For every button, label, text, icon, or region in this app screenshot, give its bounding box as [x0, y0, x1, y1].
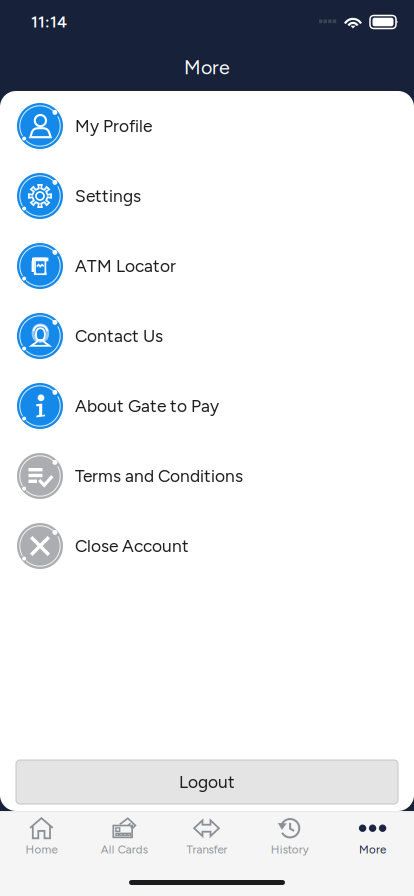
button[interactable]: Logout: [16, 760, 398, 804]
staticText: Close Account: [75, 536, 189, 556]
button[interactable]: More: [331, 811, 414, 862]
staticText: Transfer: [186, 843, 227, 856]
staticText: My Profile: [75, 116, 152, 136]
staticText: Logout: [179, 772, 235, 792]
button[interactable]: Transfer: [166, 811, 248, 862]
button[interactable]: Terms and Conditions: [0, 441, 414, 511]
staticText: ATM Locator: [75, 256, 176, 276]
button[interactable]: Home: [0, 811, 83, 862]
button[interactable]: Settings: [0, 161, 414, 231]
staticText: More: [184, 56, 230, 79]
button[interactable]: My Profile: [0, 91, 414, 161]
button[interactable]: About Gate to Pay: [0, 371, 414, 441]
button[interactable]: ATM Locator: [0, 231, 414, 301]
button[interactable]: All Cards: [83, 811, 166, 862]
button[interactable]: Close Account: [0, 511, 414, 581]
staticText: Terms and Conditions: [75, 466, 243, 486]
staticText: Home: [25, 843, 57, 856]
staticText: History: [271, 843, 309, 856]
staticText: About Gate to Pay: [75, 396, 219, 416]
staticText: All Cards: [101, 843, 148, 856]
button[interactable]: History: [248, 811, 331, 862]
staticText: More: [359, 843, 386, 856]
button[interactable]: Contact Us: [0, 301, 414, 371]
staticText: Contact Us: [75, 326, 163, 346]
staticText: Settings: [75, 186, 141, 206]
staticText: 11:14: [31, 12, 67, 32]
